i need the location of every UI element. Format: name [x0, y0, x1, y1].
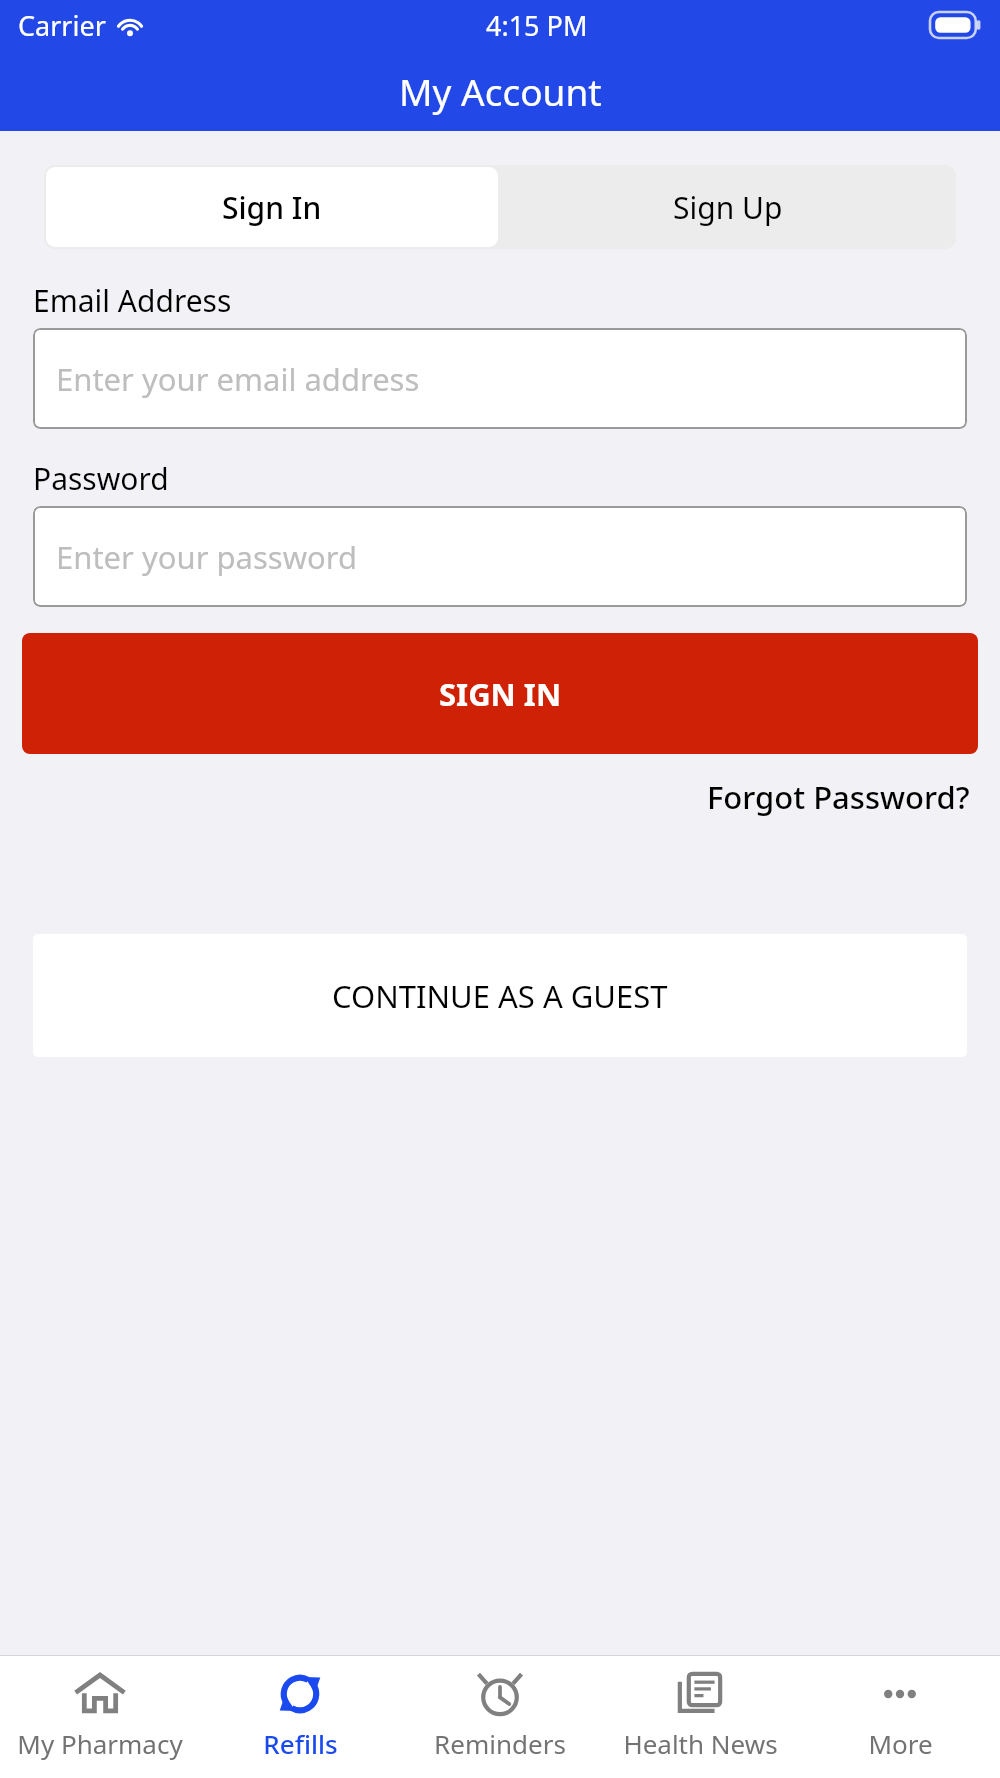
button[interactable]: Refills [200, 1656, 400, 1778]
button[interactable]: My Pharmacy [0, 1656, 200, 1778]
button[interactable]: Enter your email address [33, 328, 967, 429]
button[interactable]: Reminders [400, 1656, 600, 1778]
staticText: My Pharmacy [17, 1726, 183, 1761]
button[interactable]: SIGN IN [22, 633, 978, 754]
staticText: Password [33, 458, 169, 499]
staticText: Health News [623, 1726, 778, 1761]
staticText: Enter your password [56, 536, 358, 578]
button[interactable]: CONTINUE AS A GUEST [33, 934, 967, 1057]
staticText: Carrier [18, 7, 106, 44]
staticText: Refills [263, 1726, 338, 1761]
button[interactable]: Sign In [46, 167, 498, 247]
staticText: Reminders [434, 1726, 566, 1761]
button[interactable]: Forgot Password? [707, 776, 970, 818]
staticText: Sign Up [673, 187, 783, 228]
button[interactable]: Health News [600, 1656, 800, 1778]
staticText: 4:15 PM [486, 7, 588, 44]
staticText: Enter your email address [56, 358, 420, 400]
staticText: CONTINUE AS A GUEST [332, 975, 668, 1017]
staticText: Email Address [33, 280, 232, 321]
button[interactable]: Enter your password [33, 506, 967, 607]
staticText: Forgot Password? [707, 776, 970, 818]
staticText: SIGN IN [439, 673, 562, 715]
staticText: Sign In [222, 187, 322, 228]
button[interactable]: Sign Up [500, 165, 956, 249]
staticText: My Account [399, 66, 602, 116]
button[interactable]: More [800, 1656, 1000, 1778]
staticText: More [868, 1726, 933, 1761]
